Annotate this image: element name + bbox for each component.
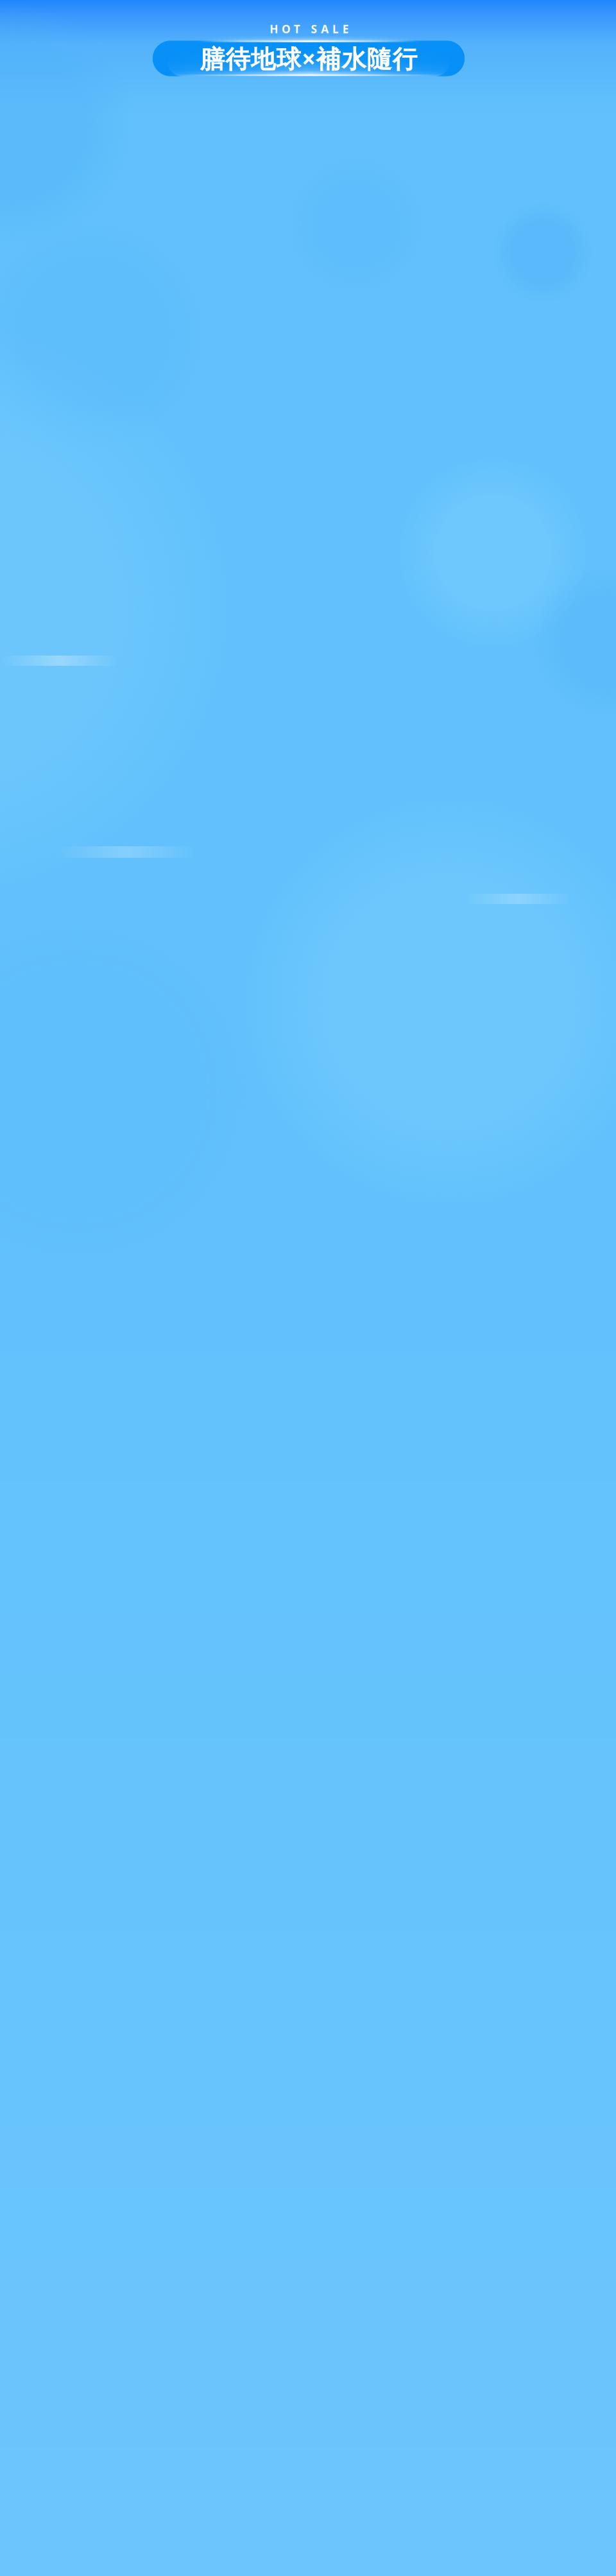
button[interactable]: 膳待地球×補水隨行 — [153, 41, 465, 76]
staticText: HOT SALE — [270, 22, 349, 36]
staticText: 膳待地球×補水隨行 — [200, 42, 417, 75]
